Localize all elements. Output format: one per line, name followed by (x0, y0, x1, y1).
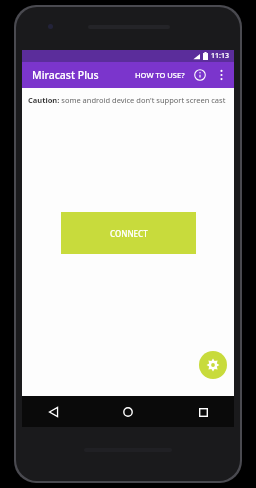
button[interactable]: Recent apps (190, 399, 216, 425)
button[interactable]: HOW TO USE? (131, 66, 189, 84)
staticText: Caution: some android device don't suppo… (28, 95, 226, 105)
staticText: Miracast Plus (32, 68, 99, 82)
button[interactable]: Home (115, 399, 141, 425)
button[interactable]: More options (211, 65, 231, 85)
button[interactable]: CONNECT (61, 212, 196, 254)
staticText: CONNECT (110, 228, 148, 239)
staticText: 11:13 (211, 51, 229, 61)
staticText: HOW TO USE? (135, 70, 185, 80)
button[interactable]: Information (189, 64, 211, 86)
button[interactable]: Back (40, 399, 66, 425)
button[interactable]: Settings (199, 351, 227, 379)
